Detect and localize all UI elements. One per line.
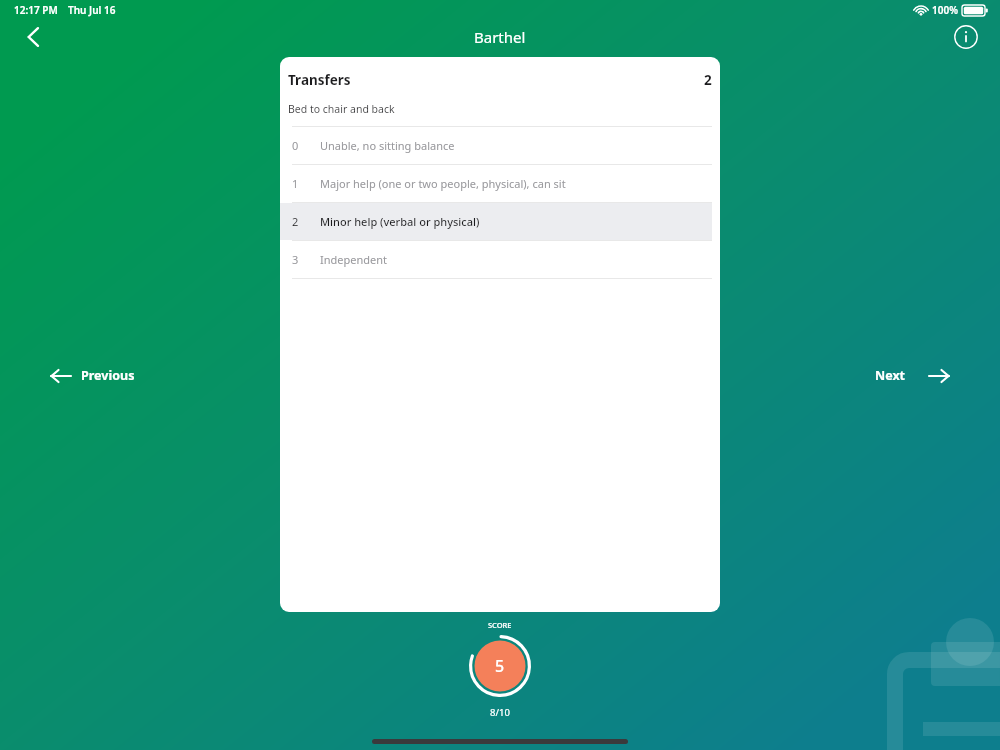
button[interactable]: Score 5 <box>469 635 531 697</box>
staticText: Next <box>875 367 906 384</box>
staticText: 5 <box>495 655 505 677</box>
staticText: Thu Jul 16 <box>68 3 116 17</box>
button[interactable]: Next <box>869 362 956 389</box>
button[interactable]: 0 <box>280 127 712 164</box>
staticText: Previous <box>81 367 135 384</box>
button[interactable]: Back <box>12 15 56 59</box>
button[interactable]: 3 <box>280 241 712 278</box>
button[interactable]: 1 <box>280 165 712 202</box>
staticText: 2 <box>704 71 712 89</box>
staticText: 0 <box>292 138 299 153</box>
staticText: Transfers <box>288 71 351 89</box>
staticText: 3 <box>292 252 299 267</box>
staticText: Bed to chair and back <box>288 102 395 116</box>
staticText: 2 <box>292 214 299 229</box>
staticText: Independent <box>320 252 388 267</box>
staticText: Minor help (verbal or physical) <box>320 214 480 229</box>
staticText: Unable, no sitting balance <box>320 138 455 153</box>
staticText: Major help (one or two people, physical)… <box>320 176 566 191</box>
staticText: SCORE <box>488 620 512 630</box>
button[interactable]: Previous <box>44 362 141 389</box>
staticText: 1 <box>292 176 299 191</box>
staticText: Barthel <box>474 27 526 47</box>
staticText: 100% <box>932 3 958 17</box>
staticText: 8/10 <box>490 706 510 719</box>
button[interactable]: 2 <box>280 203 712 240</box>
button[interactable]: Info <box>946 17 986 57</box>
staticText: 12:17 PM <box>14 3 58 17</box>
